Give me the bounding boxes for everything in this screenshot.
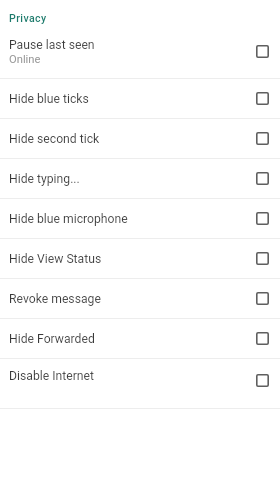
button[interactable]: Toggle Hide blue microphone <box>250 206 274 230</box>
button[interactable]: Hide Forwarded <box>0 319 280 359</box>
button[interactable]: Pause last seen <box>0 25 280 79</box>
button[interactable]: Toggle Disable Internet <box>250 368 274 392</box>
staticText: Online <box>9 53 41 66</box>
staticText: Hide typing... <box>9 172 80 186</box>
staticText: Privacy <box>9 12 47 24</box>
button[interactable]: Toggle Hide second tick <box>250 126 274 150</box>
staticText: Hide second tick <box>9 132 100 146</box>
button[interactable]: Toggle Hide typing... <box>250 166 274 190</box>
button[interactable]: Revoke message <box>0 279 280 319</box>
staticText: Hide Forwarded <box>9 332 95 346</box>
button[interactable]: Hide second tick <box>0 119 280 159</box>
button[interactable]: Hide blue ticks <box>0 79 280 119</box>
button[interactable]: Toggle Hide View Status <box>250 246 274 270</box>
staticText: Hide blue ticks <box>9 92 89 106</box>
staticText: Revoke message <box>9 292 101 306</box>
button[interactable]: Toggle Revoke message <box>250 286 274 310</box>
button[interactable]: Hide blue microphone <box>0 199 280 239</box>
button[interactable]: Toggle Hide Forwarded <box>250 326 274 350</box>
button[interactable]: Disable Internet <box>0 359 280 409</box>
button[interactable]: Hide View Status <box>0 239 280 279</box>
staticText: Hide blue microphone <box>9 212 128 226</box>
button[interactable]: Hide typing... <box>0 159 280 199</box>
staticText: Pause last seen <box>9 38 95 52</box>
staticText: Hide View Status <box>9 252 102 266</box>
button[interactable]: Toggle Hide blue ticks <box>250 86 274 110</box>
staticText: Disable Internet <box>9 369 94 383</box>
button[interactable]: Toggle Pause last seen <box>250 39 274 63</box>
